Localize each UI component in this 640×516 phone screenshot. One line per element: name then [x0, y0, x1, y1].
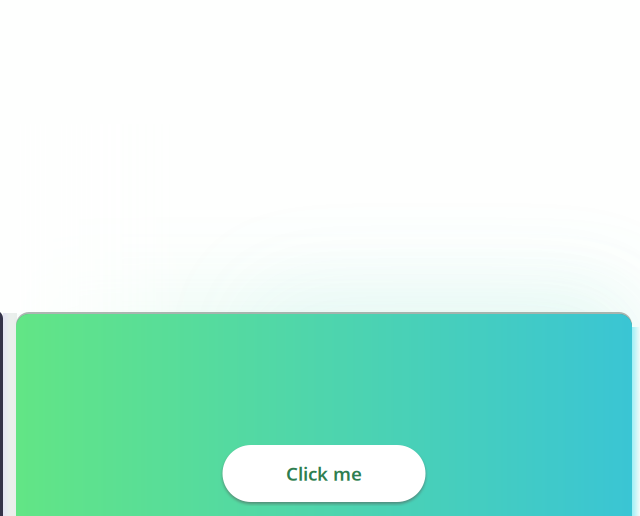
staticText: Click me: [286, 461, 362, 486]
button[interactable]: Click me: [222, 445, 425, 502]
